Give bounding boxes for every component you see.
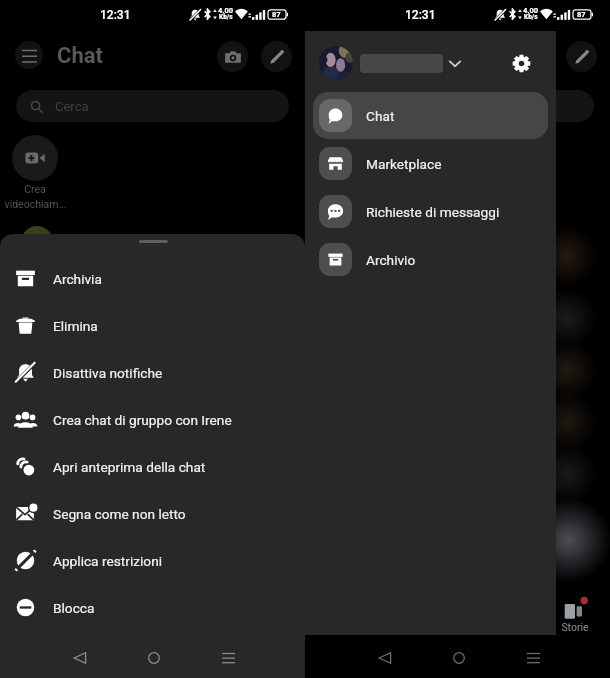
button[interactable]: Disattiva notifiche — [0, 349, 305, 396]
staticText: Applica restrizioni — [53, 553, 163, 569]
button[interactable]: Elimina — [0, 302, 305, 349]
button[interactable]: Applica restrizioni — [0, 537, 305, 584]
button[interactable]: Richieste di messaggi — [313, 188, 548, 235]
staticText: Richieste di messaggi — [366, 204, 500, 220]
staticText: 87 — [577, 10, 586, 19]
staticText: Kb/s — [524, 13, 538, 21]
staticText: Chat — [362, 43, 408, 69]
button[interactable]: Menu — [15, 41, 43, 69]
staticText: Storie — [550, 621, 600, 633]
button[interactable]: Crea videochiamata — [12, 135, 58, 181]
button[interactable]: Cerca — [321, 90, 594, 122]
staticText: Archivio — [366, 252, 416, 268]
button[interactable]: Cerca — [16, 90, 289, 122]
staticText: 12:31 — [100, 8, 131, 22]
button[interactable]: Menu — [320, 41, 348, 69]
button[interactable]: Archivio — [313, 236, 548, 283]
button[interactable]: Storie — [552, 594, 602, 638]
button[interactable]: Marketplace — [313, 140, 548, 187]
button[interactable]: Nuovo messaggio — [261, 41, 292, 72]
button[interactable]: Home — [439, 640, 479, 676]
button[interactable]: Segna come non letto — [0, 490, 305, 537]
staticText: Crea videochiam… — [303, 183, 377, 210]
button[interactable] — [314, 44, 464, 82]
button[interactable]: Home — [134, 640, 174, 676]
staticText: Crea videochiam… — [0, 183, 72, 210]
button[interactable]: Chat — [313, 92, 548, 139]
staticText: Marketplace — [366, 156, 442, 172]
button[interactable]: Fotocamera — [522, 41, 553, 72]
staticText: Blocca — [53, 600, 95, 616]
button[interactable]: Archivia — [0, 255, 305, 302]
staticText: 4.00 — [523, 6, 539, 15]
staticText: Cerca — [360, 99, 394, 114]
button[interactable]: Apri anteprima della chat — [0, 443, 305, 490]
staticText: 12:31 — [405, 8, 436, 22]
staticText: Cerca — [55, 99, 89, 114]
staticText: Crea chat di gruppo con Irene — [53, 412, 232, 428]
staticText: Disattiva notifiche — [53, 365, 163, 381]
staticText: Apri anteprima della chat — [53, 459, 206, 475]
staticText: Segna come non letto — [53, 506, 186, 522]
staticText: 87 — [272, 10, 281, 19]
button[interactable]: Crea chat di gruppo con Irene — [0, 396, 305, 443]
staticText: Archivia — [53, 271, 102, 287]
button[interactable]: Recenti — [208, 640, 248, 676]
staticText: Chat — [57, 43, 103, 69]
staticText: Chat — [366, 108, 395, 124]
button[interactable]: Crea videochiamata — [317, 135, 363, 181]
button[interactable]: Fotocamera — [217, 41, 248, 72]
button[interactable]: Indietro — [60, 640, 100, 676]
button[interactable]: Blocca — [0, 584, 305, 631]
button[interactable]: Indietro — [365, 640, 405, 676]
staticText: Elimina — [53, 318, 98, 334]
button[interactable]: Nuovo messaggio — [566, 41, 597, 72]
staticText: Kb/s — [219, 13, 233, 21]
staticText: 4.00 — [218, 6, 234, 15]
button[interactable]: Impostazioni — [502, 44, 540, 82]
button[interactable]: Recenti — [513, 640, 553, 676]
